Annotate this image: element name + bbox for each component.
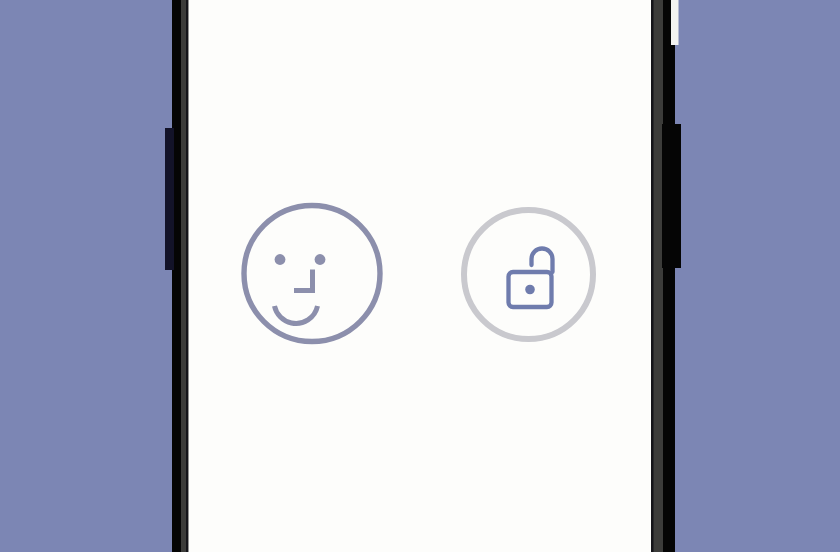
button[interactable]: Face, continue as guest: [237, 199, 387, 349]
button[interactable]: Unlocked, sign in: [459, 205, 598, 344]
